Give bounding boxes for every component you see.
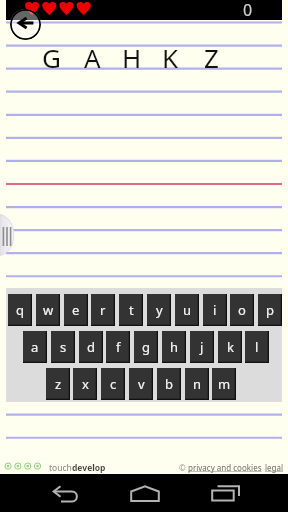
staticText: j [200, 338, 204, 356]
button[interactable]: g [134, 331, 158, 363]
staticText: h [170, 338, 179, 356]
staticText: 0 [243, 0, 253, 21]
button[interactable]: j [190, 331, 214, 363]
staticText: A [84, 40, 101, 75]
staticText: a [31, 338, 39, 356]
staticText: s [60, 338, 67, 356]
button[interactable]: h [162, 331, 186, 363]
button[interactable]: i [203, 294, 227, 326]
button[interactable]: d [79, 331, 103, 363]
staticText: p [266, 301, 274, 319]
staticText: o [238, 301, 246, 319]
staticText: b [165, 375, 173, 393]
staticText: k [227, 338, 234, 356]
button[interactable]: l [245, 331, 269, 363]
staticText: K [162, 40, 179, 75]
button[interactable]: s [51, 331, 75, 363]
button[interactable]: n [185, 368, 209, 400]
button[interactable]: t [119, 294, 143, 326]
staticText: w [43, 301, 54, 319]
staticText: v [138, 375, 145, 393]
button[interactable]: z [46, 368, 70, 400]
staticText: q [16, 301, 24, 319]
button[interactable]: k [218, 331, 242, 363]
button[interactable]: Back [50, 484, 82, 504]
staticText: r [100, 301, 106, 319]
staticText: © [179, 462, 188, 473]
staticText: m [218, 375, 231, 393]
staticText: u [183, 301, 192, 319]
button[interactable]: Back [10, 9, 41, 40]
staticText: develop [72, 462, 106, 474]
staticText: e [72, 301, 80, 319]
staticText: Z [204, 40, 219, 75]
staticText: i [213, 301, 217, 319]
button[interactable]: q [8, 294, 32, 326]
button[interactable]: y [147, 294, 171, 326]
button[interactable]: privacy and cookies [188, 462, 262, 473]
button[interactable]: v [129, 368, 153, 400]
button[interactable]: u [175, 294, 199, 326]
button[interactable]: p [258, 294, 282, 326]
button[interactable]: o [230, 294, 254, 326]
button[interactable]: Home [130, 485, 161, 503]
staticText: l [255, 338, 259, 356]
button[interactable]: b [157, 368, 181, 400]
staticText: touch [49, 462, 72, 474]
staticText: G [42, 40, 61, 75]
button[interactable]: Recent apps [211, 485, 242, 503]
staticText: H [122, 40, 142, 75]
staticText: z [55, 375, 62, 393]
button[interactable]: c [101, 368, 125, 400]
button[interactable]: x [73, 368, 97, 400]
button[interactable]: w [36, 294, 60, 326]
staticText: d [87, 338, 95, 356]
staticText: c [110, 375, 117, 393]
button[interactable]: legal [265, 462, 284, 473]
button[interactable]: f [106, 331, 130, 363]
button[interactable]: m [212, 368, 236, 400]
staticText: f [116, 338, 121, 356]
button[interactable]: e [64, 294, 88, 326]
button[interactable]: r [91, 294, 115, 326]
staticText: x [82, 375, 89, 393]
staticText: t [129, 301, 134, 319]
staticText: g [142, 338, 150, 356]
staticText: n [193, 375, 202, 393]
staticText: y [156, 301, 163, 319]
button[interactable]: a [23, 331, 47, 363]
